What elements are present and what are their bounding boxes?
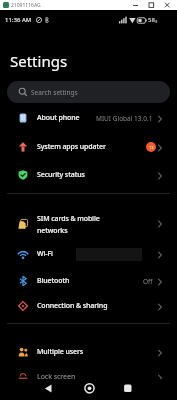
button[interactable] — [0, 379, 59, 400]
staticText: Wi-Fi — [37, 249, 53, 259]
staticText: About phone — [37, 113, 80, 123]
staticText: Security status — [37, 170, 85, 180]
button[interactable]: Search settings — [7, 81, 170, 103]
button[interactable]: Security status — [0, 161, 177, 189]
staticText: Search settings — [31, 88, 78, 97]
staticText: Bluetooth — [37, 276, 70, 286]
staticText: 11:36 AM — [5, 16, 32, 24]
staticText: networks — [37, 226, 68, 236]
button[interactable]: SIM cards & mobile — [0, 207, 177, 241]
staticText: Lock screen — [37, 372, 76, 382]
button[interactable] — [118, 379, 177, 400]
staticText: SIM cards & mobile — [37, 214, 100, 224]
button[interactable]: System apps updater — [0, 133, 177, 161]
staticText: Connection & sharing — [37, 301, 108, 311]
staticText: MIUI Global 13.0.1 — [96, 114, 153, 123]
button[interactable]: Connection & sharing — [0, 292, 177, 320]
staticText: 13 — [149, 145, 154, 150]
staticText: 21091116AG — [11, 2, 41, 9]
button[interactable]: Lock screen — [0, 363, 177, 391]
staticText: 58 — [148, 16, 155, 24]
button[interactable]: Wi-Fi — [0, 240, 177, 268]
button[interactable] — [59, 379, 118, 400]
staticText: System apps updater — [37, 142, 106, 152]
staticText: Multiple users — [37, 347, 84, 357]
button[interactable]: Multiple users — [0, 338, 177, 366]
staticText: Off — [143, 277, 153, 286]
button[interactable]: About phone — [0, 104, 177, 132]
button[interactable]: Bluetooth — [0, 267, 177, 295]
staticText: Settings — [10, 51, 68, 71]
